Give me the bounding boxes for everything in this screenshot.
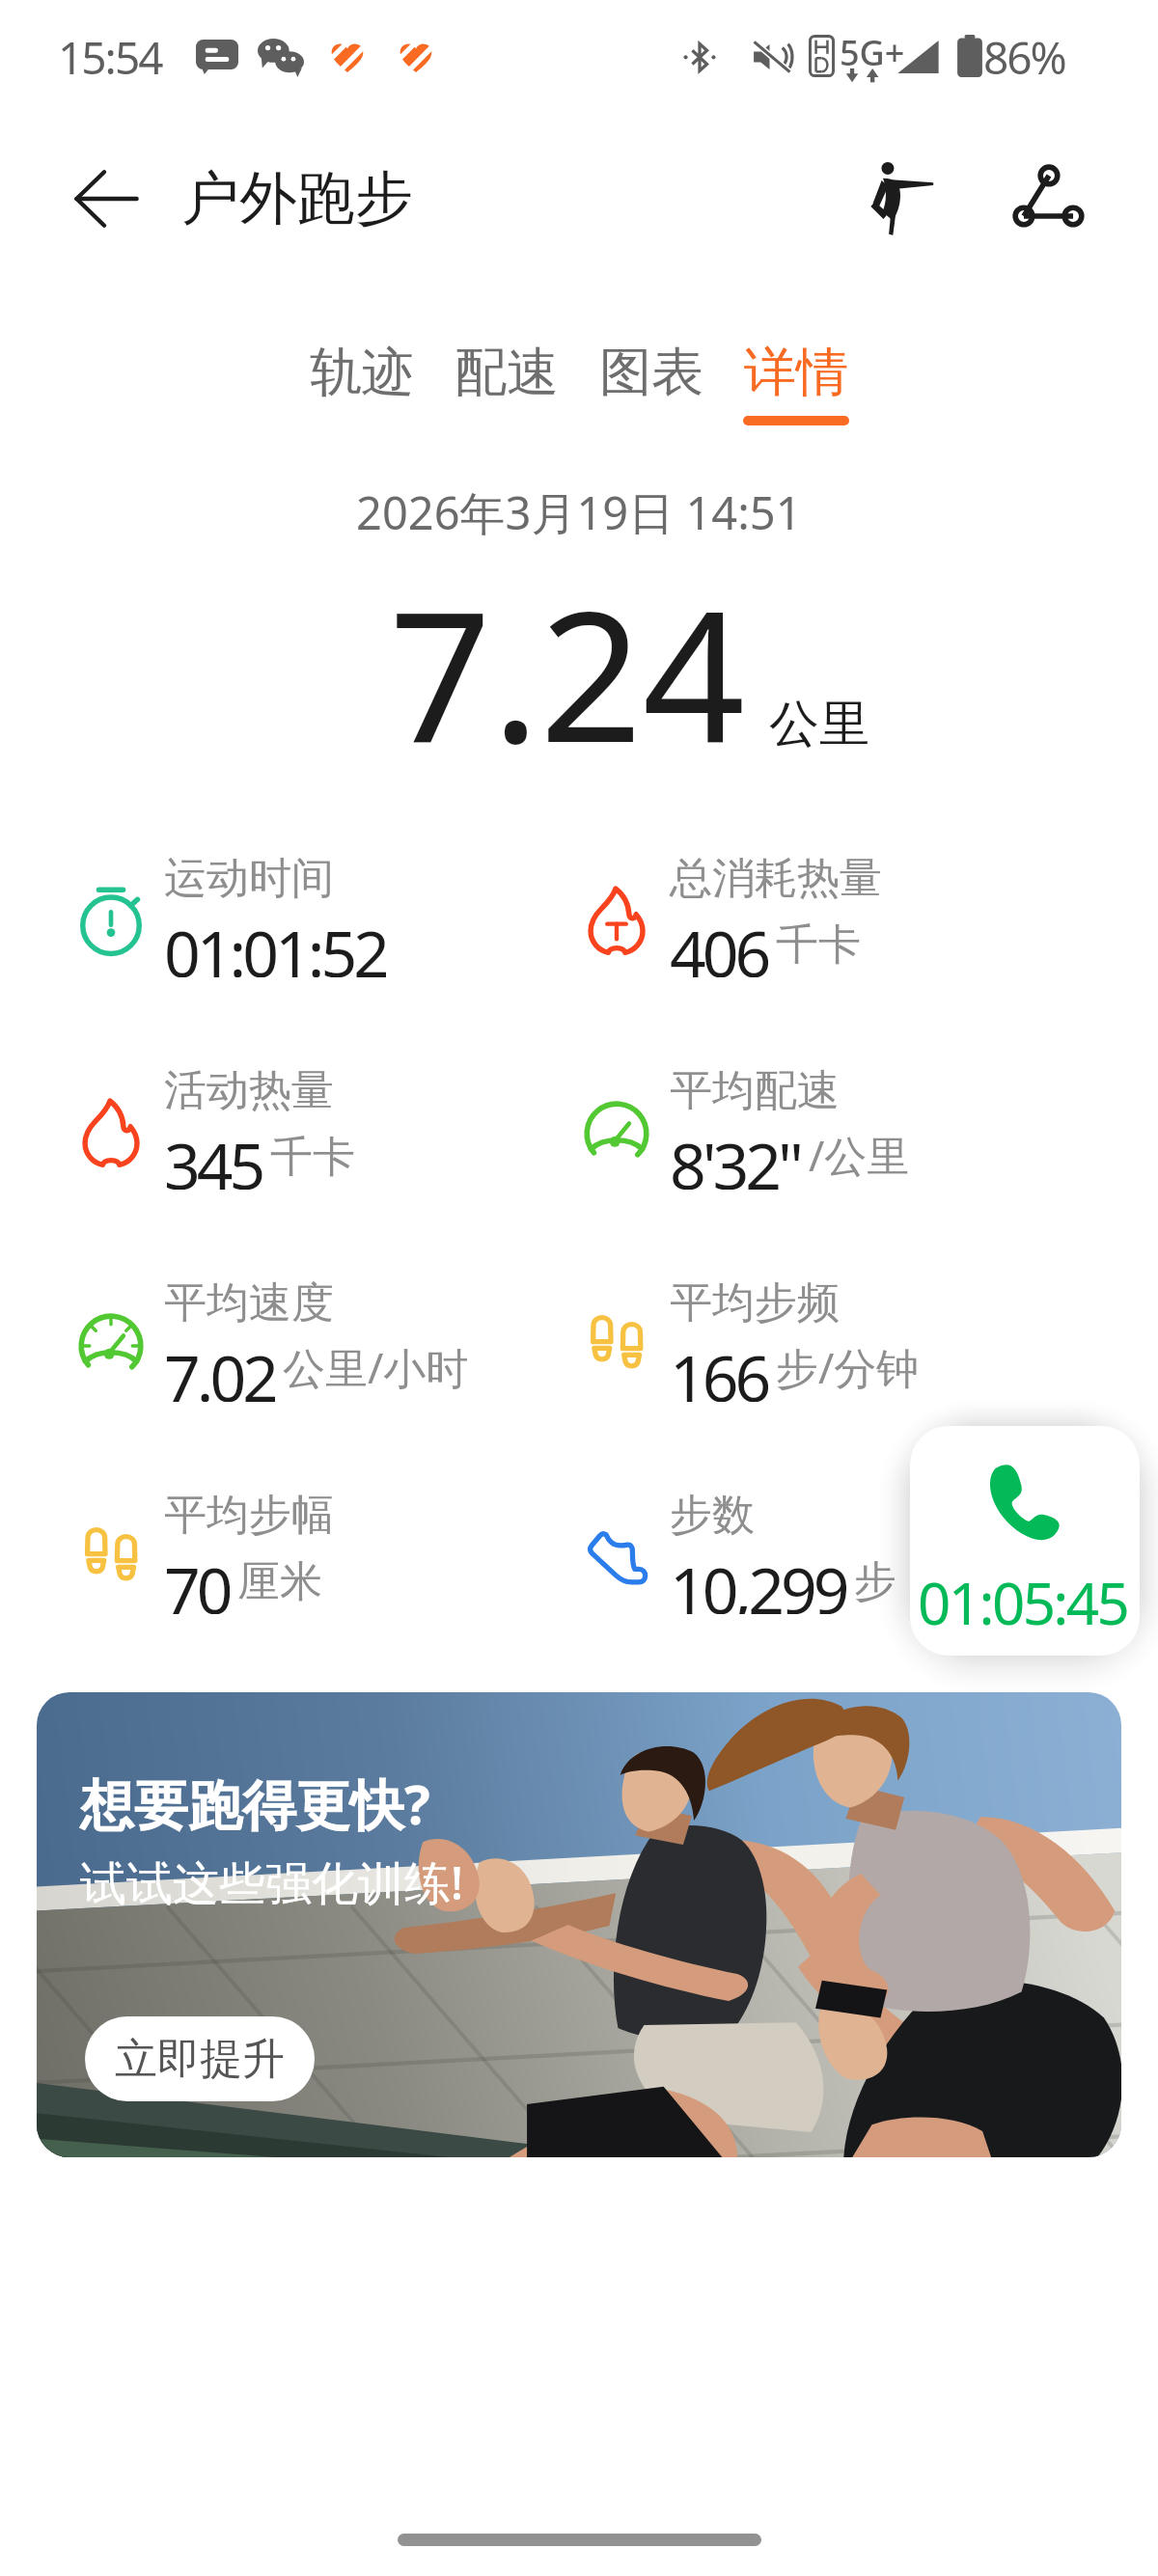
staticText: 步数 <box>670 1489 755 1542</box>
staticText: 详情 <box>744 340 848 405</box>
staticText: 运动时间 <box>164 852 334 905</box>
staticText: 试试这些强化训练! <box>80 1850 464 1914</box>
staticText: 10,299 <box>670 1546 846 1614</box>
staticText: 立即提升 <box>115 2033 285 2086</box>
button[interactable]: 想要跑得更快? <box>37 1692 1121 2157</box>
staticText: 厘米 <box>237 1555 322 1608</box>
staticText: 户外跑步 <box>181 162 413 235</box>
staticText: 活动热量 <box>164 1064 334 1117</box>
staticText: 70 <box>164 1546 230 1614</box>
staticText: 2026年3月19日 14:51 <box>356 481 802 543</box>
staticText: 平均步幅 <box>164 1489 334 1542</box>
staticText: 平均配速 <box>670 1064 840 1117</box>
staticText: 平均步频 <box>670 1276 840 1329</box>
button[interactable]: Share <box>1004 154 1090 241</box>
staticText: 平均速度 <box>164 1276 334 1329</box>
staticText: 步 <box>854 1555 896 1608</box>
button[interactable]: 图表 <box>579 332 724 448</box>
button[interactable]: Ongoing call <box>910 1426 1140 1656</box>
button[interactable]: 立即提升 <box>85 2016 315 2101</box>
button[interactable]: 详情 <box>724 332 868 448</box>
staticText: 15:54 <box>58 27 162 88</box>
staticText: 345 <box>164 1121 262 1190</box>
button[interactable]: Training plan <box>857 154 944 241</box>
staticText: 配速 <box>455 340 559 405</box>
staticText: 5G+ <box>840 29 905 76</box>
staticText: 86% <box>983 27 1065 88</box>
staticText: 01:05:45 <box>918 1563 1128 1642</box>
staticText: 公里 <box>769 693 869 756</box>
staticText: 千卡 <box>776 918 861 972</box>
staticText: 7.02 <box>164 1333 275 1402</box>
staticText: 166 <box>670 1333 768 1402</box>
staticText: 8'32" <box>670 1121 801 1190</box>
button[interactable]: Back <box>64 158 145 239</box>
staticText: 步/分钟 <box>776 1338 920 1396</box>
button[interactable]: 轨迹 <box>289 332 434 448</box>
staticText: 总消耗热量 <box>670 852 882 905</box>
button[interactable]: 配速 <box>434 332 579 448</box>
staticText: 01:01:52 <box>164 909 386 977</box>
staticText: /公里 <box>809 1126 910 1184</box>
staticText: 想要跑得更快? <box>80 1767 430 1840</box>
staticText: 千卡 <box>270 1131 355 1184</box>
staticText: 公里/小时 <box>283 1338 469 1396</box>
staticText: 图表 <box>599 340 703 405</box>
staticText: 7.24 <box>389 550 746 794</box>
staticText: 406 <box>670 909 768 977</box>
staticText: 轨迹 <box>310 340 414 405</box>
